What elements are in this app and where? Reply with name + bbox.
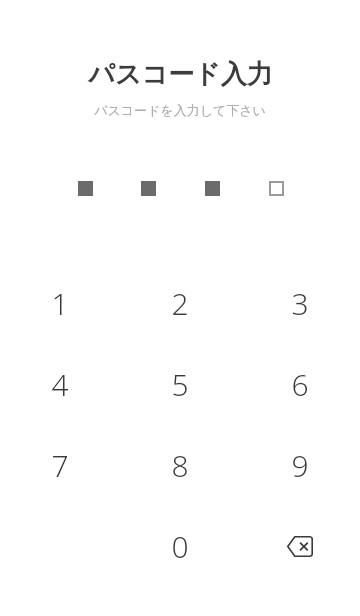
staticText: 9 xyxy=(291,445,309,486)
staticText: 4 xyxy=(51,364,69,405)
staticText: 0 xyxy=(171,526,189,567)
staticText: 3 xyxy=(291,283,309,324)
staticText: パスコードを入力して下さい xyxy=(94,102,266,118)
button[interactable]: 9 xyxy=(240,425,360,506)
staticText: 8 xyxy=(171,445,189,486)
staticText: 5 xyxy=(171,364,189,405)
button[interactable]: 1 xyxy=(0,263,120,344)
button[interactable]: 7 xyxy=(0,425,120,506)
staticText: パスコード入力 xyxy=(88,58,273,91)
staticText: 1 xyxy=(51,283,69,324)
button[interactable]: 0 xyxy=(120,506,240,587)
button[interactable]: Backspace xyxy=(240,506,360,587)
staticText: 7 xyxy=(51,445,69,486)
button[interactable]: 6 xyxy=(240,344,360,425)
staticText: 6 xyxy=(291,364,309,405)
button[interactable]: 5 xyxy=(120,344,240,425)
button[interactable]: 2 xyxy=(120,263,240,344)
button[interactable]: 4 xyxy=(0,344,120,425)
button[interactable]: 8 xyxy=(120,425,240,506)
button[interactable]: 3 xyxy=(240,263,360,344)
staticText: 2 xyxy=(171,283,189,324)
